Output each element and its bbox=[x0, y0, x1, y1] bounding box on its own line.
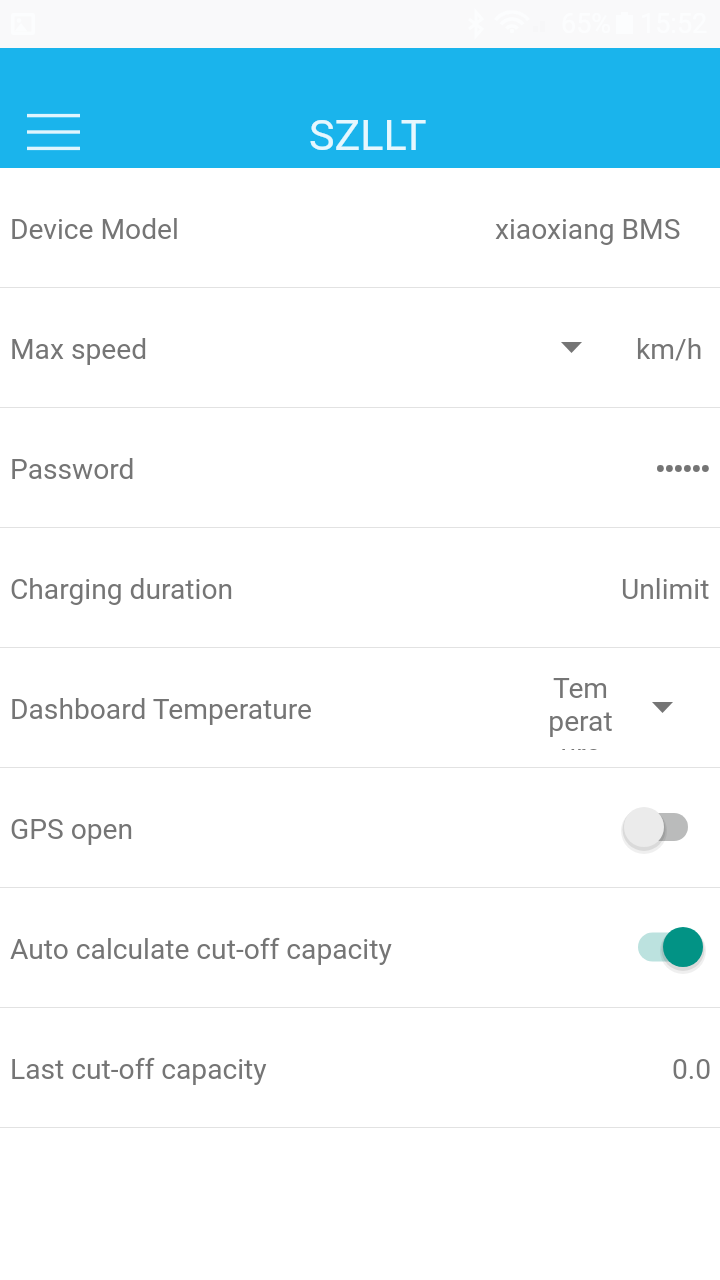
button[interactable]: Max speed bbox=[0, 288, 720, 407]
button[interactable]: Last cut-off capacity bbox=[0, 1008, 720, 1127]
staticText: Dashboard Temperature bbox=[10, 693, 312, 726]
button[interactable]: GPS open bbox=[0, 768, 720, 887]
staticText: Device Model bbox=[10, 213, 179, 246]
button[interactable]: Switch off bbox=[610, 768, 720, 887]
staticText: Charging duration bbox=[10, 573, 234, 606]
button[interactable]: Switch on bbox=[610, 888, 720, 1007]
staticText: Max speed bbox=[10, 333, 148, 366]
staticText: Last cut-off capacity bbox=[10, 1053, 267, 1086]
staticText: 0.0 bbox=[672, 1053, 712, 1086]
staticText: Temperature bbox=[547, 672, 614, 750]
button[interactable]: Device Model bbox=[0, 168, 720, 287]
button[interactable]: Open navigation menu bbox=[0, 84, 106, 156]
button[interactable]: Auto calculate cut-off capacity bbox=[0, 888, 720, 1007]
button[interactable]: Charging duration bbox=[0, 528, 720, 647]
staticText: xiaoxiang BMS bbox=[495, 213, 681, 246]
button[interactable]: Password bbox=[0, 408, 720, 527]
button[interactable]: Dashboard Temperature bbox=[0, 648, 720, 767]
staticText: SZLLT bbox=[309, 110, 427, 160]
staticText: Unlimit bbox=[621, 573, 710, 606]
staticText: Auto calculate cut-off capacity bbox=[10, 933, 392, 966]
staticText: Password bbox=[10, 453, 135, 486]
staticText: km/h bbox=[636, 333, 703, 366]
staticText: GPS open bbox=[10, 813, 134, 846]
